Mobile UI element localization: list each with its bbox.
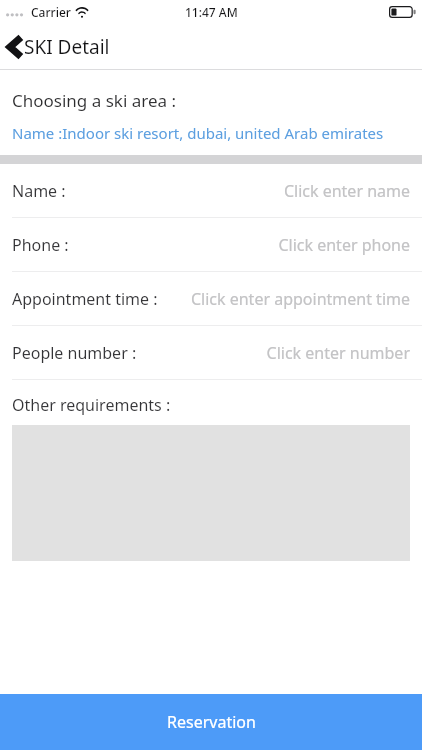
button[interactable]: Appointment time :: [0, 272, 422, 325]
staticText: 11:47 AM: [185, 4, 238, 20]
staticText: Other requirements :: [12, 394, 171, 416]
button[interactable]: People number :: [0, 326, 422, 379]
staticText: Carrier: [31, 4, 71, 20]
staticText: Choosing a ski area :: [12, 89, 177, 112]
staticText: Name :: [12, 180, 66, 202]
staticText: Click enter appointment time: [190, 288, 410, 310]
staticText: Reservation: [167, 711, 256, 733]
staticText: Appointment time :: [12, 288, 158, 310]
button[interactable]: Phone :: [0, 218, 422, 271]
button[interactable]: Reservation: [0, 694, 422, 750]
button[interactable]: Back: [0, 23, 118, 70]
button[interactable]: Name :: [0, 164, 422, 217]
staticText: SKI Detail: [24, 34, 110, 60]
staticText: Click enter phone: [278, 234, 410, 256]
button[interactable]: Name :Indoor ski resort, dubai, united A…: [12, 123, 384, 143]
staticText: Click enter number: [266, 342, 410, 364]
staticText: Click enter name: [283, 180, 410, 202]
staticText: Phone :: [12, 234, 69, 256]
staticText: People number :: [12, 342, 137, 364]
